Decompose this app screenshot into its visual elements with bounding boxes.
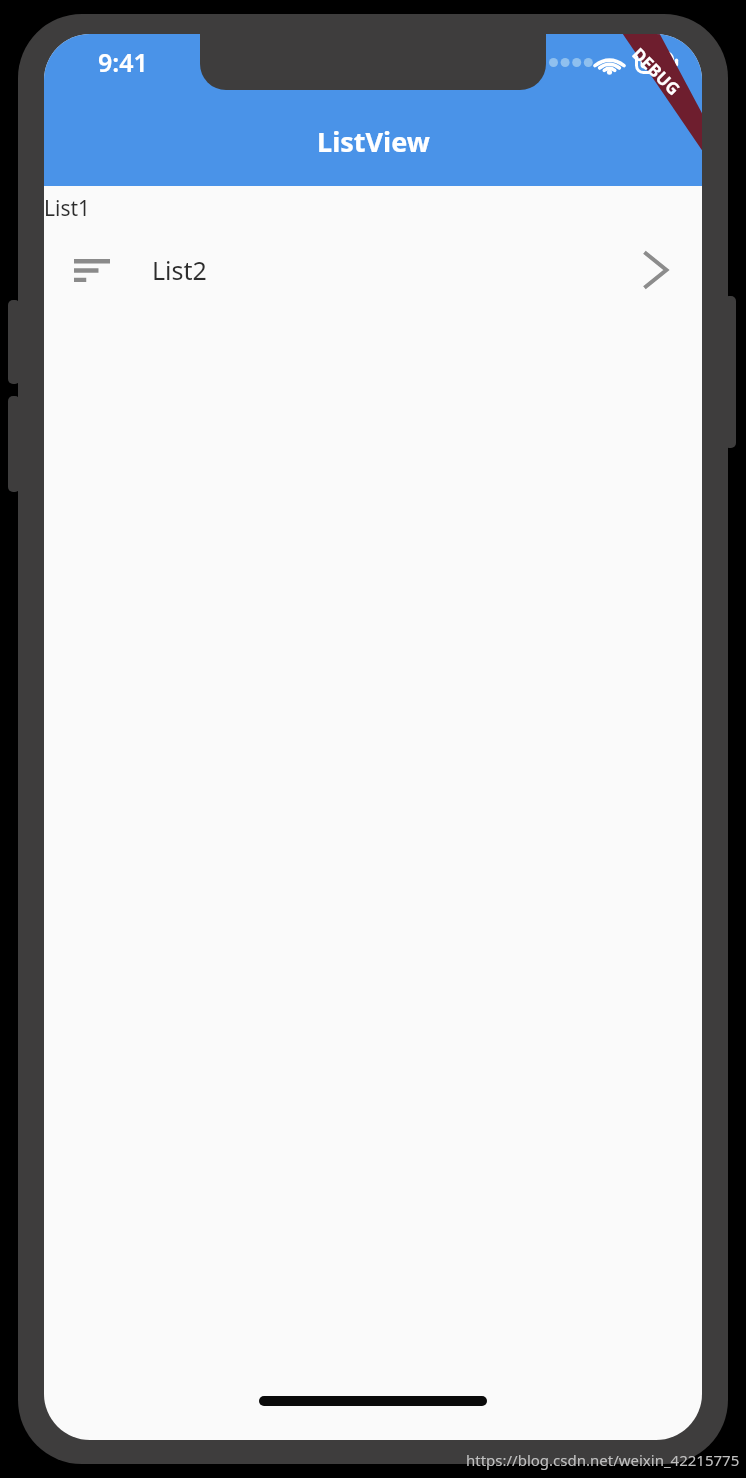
staticText: 9:41 <box>98 45 148 79</box>
staticText: List1 <box>44 194 91 223</box>
staticText: DEBUG <box>627 42 685 100</box>
other: Open List2 <box>640 245 670 295</box>
button[interactable]: List2 <box>44 230 702 310</box>
staticText: ListView <box>317 123 430 160</box>
staticText: https://blog.csdn.net/weixin_42215775 <box>466 1450 740 1470</box>
button[interactable]: List1 <box>44 186 702 230</box>
staticText: List2 <box>152 253 207 287</box>
